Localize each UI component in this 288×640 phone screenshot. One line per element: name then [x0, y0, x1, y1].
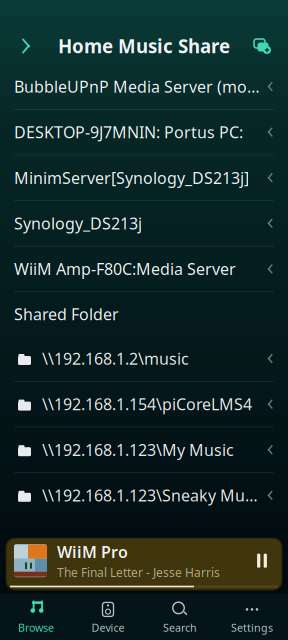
button[interactable]: DESKTOP-9J7MNIN: Portus PC: — [0, 110, 288, 155]
button[interactable]: WiiM Amp-F80C:Media Server — [0, 246, 288, 292]
button[interactable]: Search — [144, 598, 216, 638]
button[interactable]: Pause — [242, 539, 282, 583]
staticText: Shared Folder — [14, 303, 119, 325]
staticText: Home Music Share — [58, 34, 230, 58]
staticText: \\192.168.1.2\music — [42, 348, 189, 369]
staticText: \\192.168.1.123\My Music — [42, 439, 234, 460]
staticText: WiiM Pro — [57, 541, 128, 562]
staticText: DESKTOP-9J7MNIN: Portus PC: — [14, 121, 243, 143]
staticText: Device — [91, 620, 124, 635]
button[interactable]: Device — [72, 598, 144, 638]
staticText: Synology_DS213j — [14, 213, 142, 234]
button[interactable]: Settings — [216, 598, 288, 638]
button[interactable]: Back — [6, 28, 46, 64]
button[interactable]: Browse — [0, 598, 72, 638]
button[interactable]: Synology_DS213j — [0, 201, 288, 246]
button[interactable]: BubbleUPnP Media Server (motorola... — [0, 64, 288, 110]
staticText: Settings — [231, 620, 273, 635]
button[interactable]: \\192.168.1.2\music — [0, 336, 288, 382]
staticText: MinimServer[Synology_DS213j] — [14, 167, 249, 188]
staticText: WiiM Amp-F80C:Media Server — [14, 258, 236, 279]
staticText: \\192.168.1.123\Sneaky Music — [42, 485, 260, 506]
button[interactable]: MinimServer[Synology_DS213j] — [0, 155, 288, 201]
staticText: The Final Letter - Jesse Harris — [57, 564, 220, 580]
button[interactable]: \\192.168.1.154\piCoreLMS4 — [0, 382, 288, 427]
staticText: BubbleUPnP Media Server (motorola... — [14, 76, 260, 97]
button[interactable]: \\192.168.1.123\My Music — [0, 427, 288, 473]
staticText: \\192.168.1.154\piCoreLMS4 — [42, 393, 252, 415]
staticText: Browse — [18, 620, 54, 635]
staticText: Search — [163, 620, 197, 635]
button[interactable]: \\192.168.1.123\Sneaky Music — [0, 473, 288, 518]
button[interactable]: Add media server — [242, 28, 282, 64]
